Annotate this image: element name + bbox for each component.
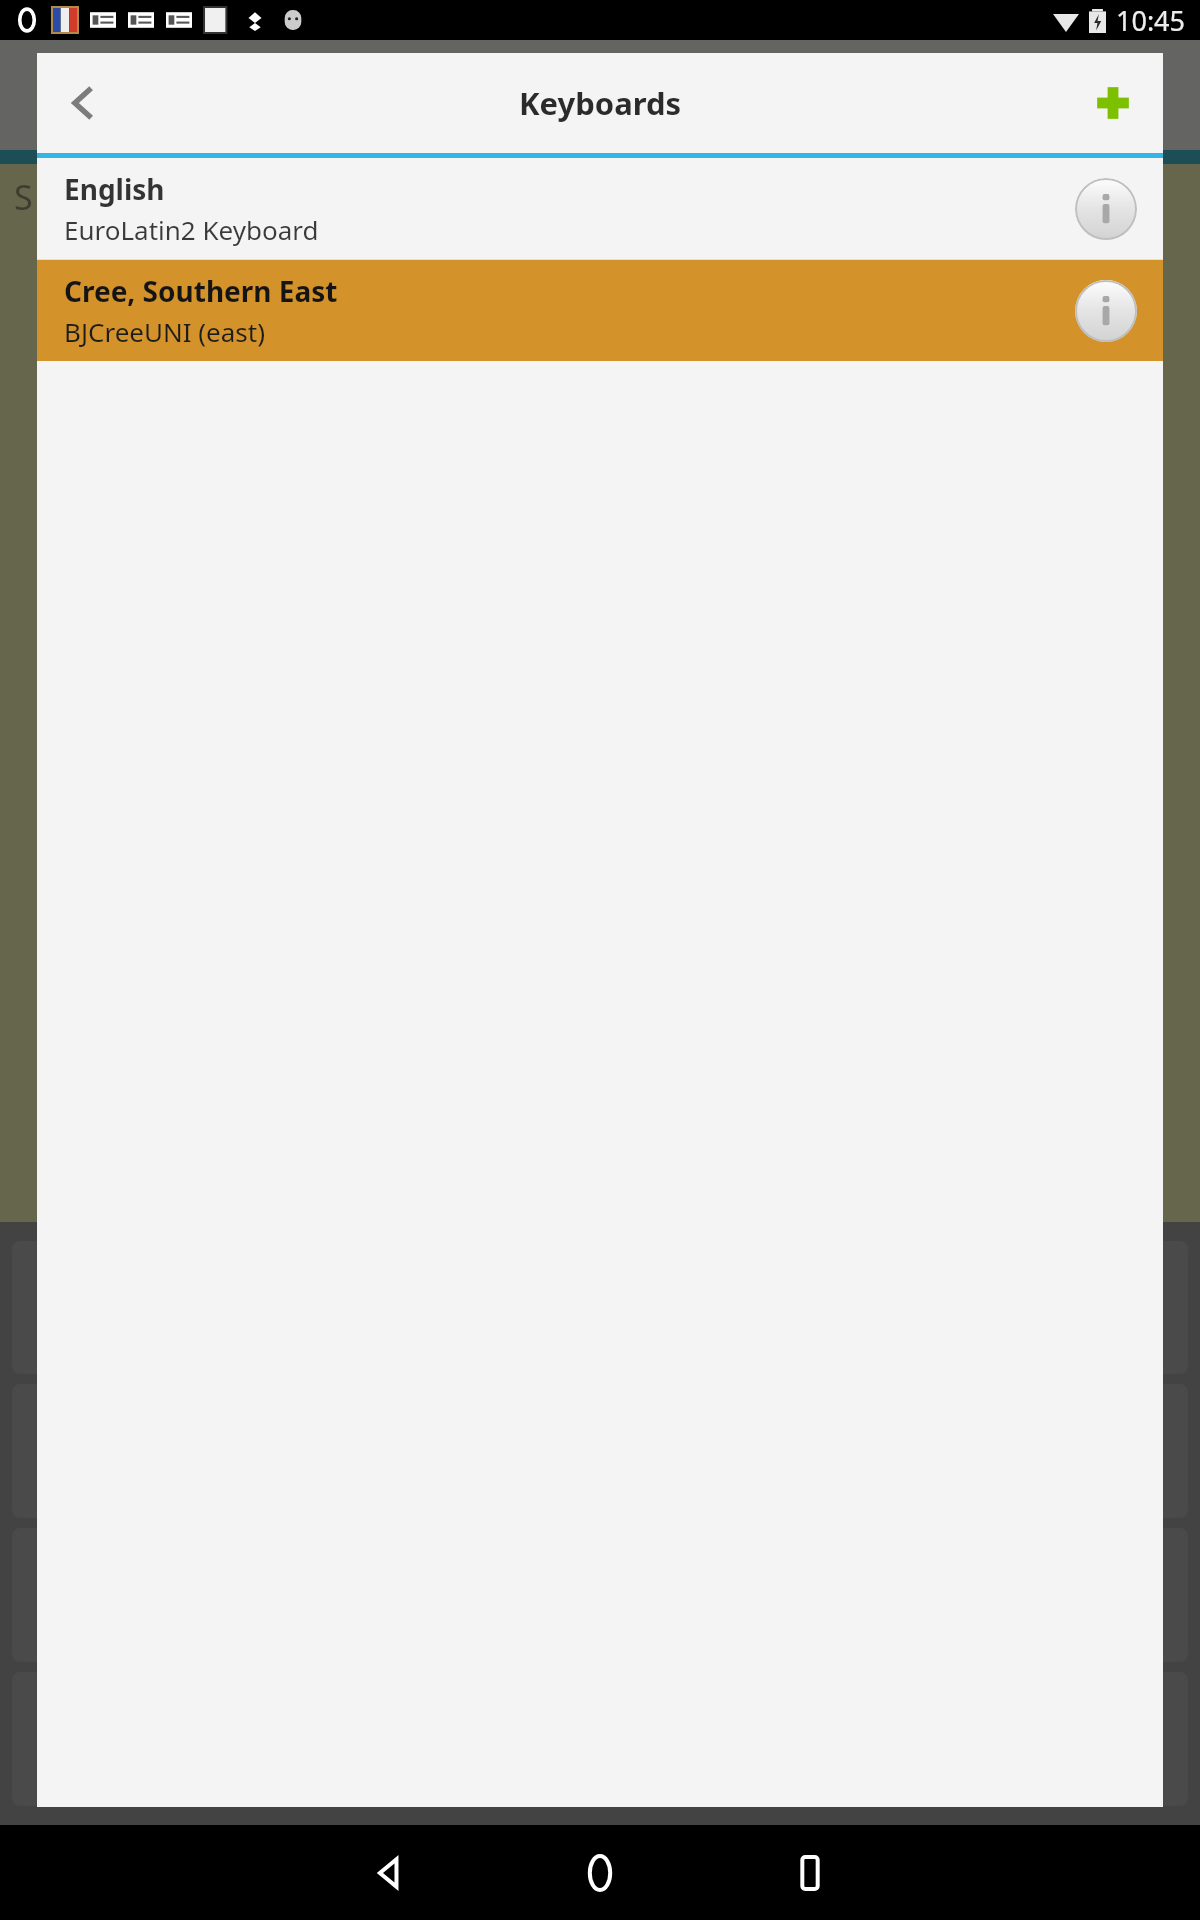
staticText: EuroLatin2 Keyboard [64, 212, 319, 247]
staticText: Keyboards [519, 82, 682, 124]
button[interactable] [1078, 1528, 1188, 1662]
button[interactable]: Recents [755, 1825, 865, 1920]
staticText: English [64, 170, 165, 208]
button[interactable]: Info about Cree, Southern East [1071, 276, 1141, 346]
button[interactable] [1078, 1384, 1188, 1518]
button[interactable]: Home [545, 1825, 655, 1920]
button[interactable]: Cree, Southern East [37, 260, 1163, 361]
button[interactable] [1078, 1241, 1188, 1374]
staticText: 10:45 [1116, 2, 1186, 39]
button[interactable]: English [37, 158, 1163, 259]
button[interactable]: Add keyboard [1077, 67, 1149, 139]
staticText: S [14, 174, 33, 220]
button[interactable] [12, 1672, 176, 1806]
button[interactable]: Back [335, 1825, 445, 1920]
button[interactable]: Info about English [1071, 174, 1141, 244]
staticText: BJCreeUNI (east) [64, 314, 266, 349]
staticText: Cree, Southern East [64, 272, 338, 310]
button[interactable] [1025, 1672, 1188, 1806]
button[interactable] [12, 1384, 123, 1518]
button[interactable] [12, 1241, 123, 1374]
button[interactable]: Back [45, 65, 121, 141]
button[interactable] [12, 1528, 123, 1662]
